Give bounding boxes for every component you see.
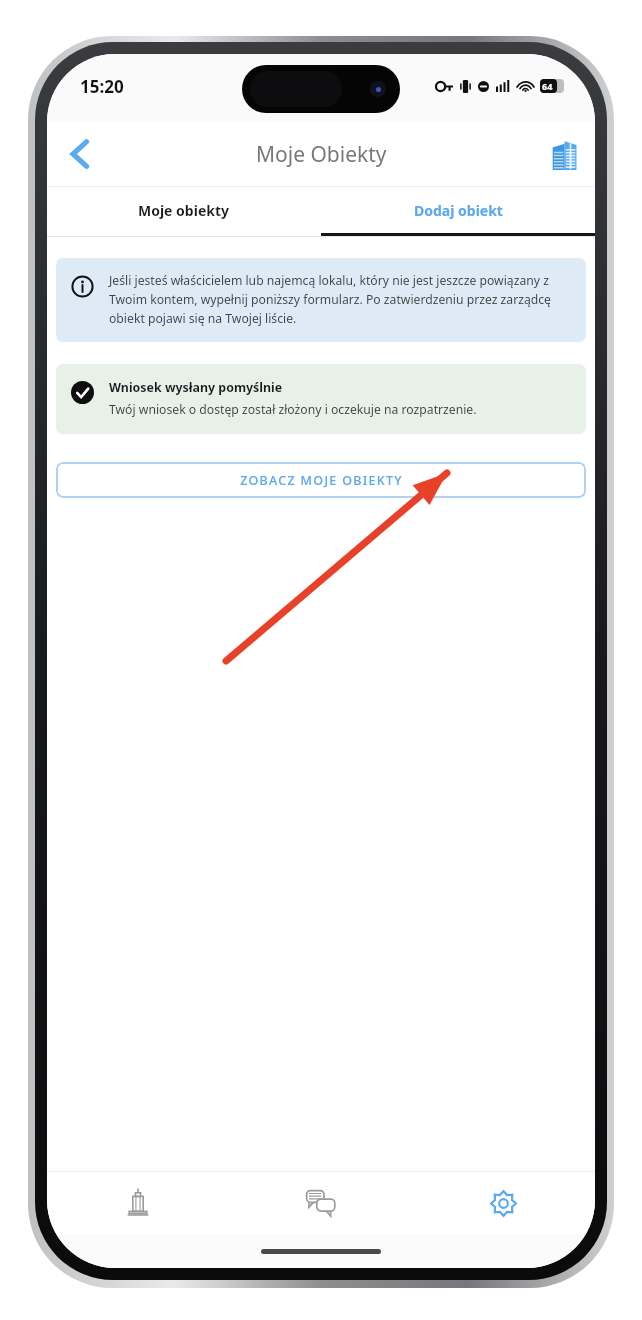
staticText: Dodaj obiekt: [414, 201, 503, 220]
button[interactable]: ZOBACZ MOJE OBIEKTY: [56, 462, 586, 498]
button[interactable]: Jeśli jesteś właścicielem lub najemcą lo…: [56, 258, 586, 342]
staticText: Moje obiekty: [138, 201, 230, 220]
button[interactable]: Ustawienia: [412, 1172, 595, 1234]
staticText: 15:20: [80, 75, 124, 98]
button[interactable]: Obiekty: [47, 1172, 229, 1234]
button[interactable]: Dodaj obiekt: [321, 187, 595, 233]
staticText: Twój wniosek o dostęp został złożony i o…: [109, 401, 477, 418]
staticText: Wniosek wysłany pomyślnie: [109, 379, 283, 396]
button[interactable]: Wniosek wysłany pomyślnie: [56, 364, 586, 434]
button[interactable]: Building: [539, 130, 587, 178]
staticText: Jeśli jesteś właścicielem lub najemcą lo…: [109, 272, 570, 326]
button[interactable]: Back: [55, 130, 103, 178]
staticText: ZOBACZ MOJE OBIEKTY: [240, 472, 403, 489]
staticText: Moje Obiekty: [256, 140, 387, 169]
button[interactable]: Moje obiekty: [47, 187, 321, 233]
staticText: 64: [542, 80, 553, 92]
button[interactable]: Wiadomości: [229, 1172, 412, 1234]
